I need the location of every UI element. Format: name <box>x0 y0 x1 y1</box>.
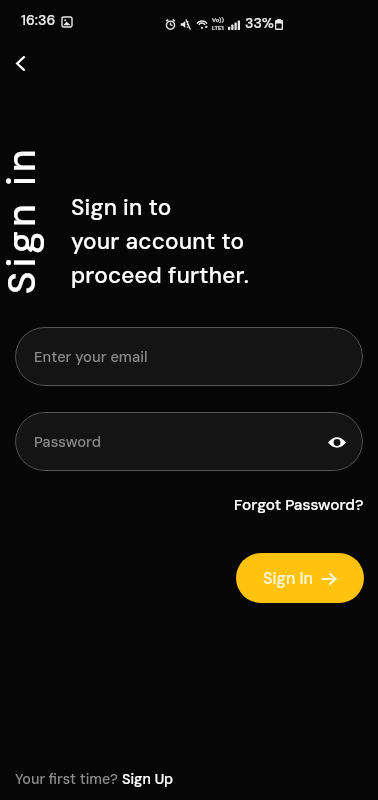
button[interactable]: Show password <box>322 427 352 457</box>
button[interactable]: Your first time? <box>15 770 174 789</box>
staticText: LTE1 <box>212 24 224 32</box>
staticText: 16:36 <box>21 11 56 29</box>
staticText: Forgot Password? <box>234 495 364 515</box>
staticText: Your first time? <box>15 770 122 789</box>
button[interactable]: Password <box>15 412 363 471</box>
staticText: Vo)) <box>212 16 224 24</box>
staticText: Sign in to your account to proceed furth… <box>71 193 250 290</box>
button[interactable]: Forgot Password? <box>230 489 368 521</box>
staticText: Enter your email <box>34 347 148 366</box>
staticText: Password <box>34 432 102 451</box>
button[interactable]: Enter your email <box>15 327 363 386</box>
button[interactable]: Back <box>0 43 40 83</box>
button[interactable]: Sign In <box>236 553 364 603</box>
staticText: Sign Up <box>122 770 174 789</box>
staticText: 33% <box>245 14 274 32</box>
staticText: Sign in <box>0 144 46 294</box>
staticText: Sign In <box>263 568 314 589</box>
